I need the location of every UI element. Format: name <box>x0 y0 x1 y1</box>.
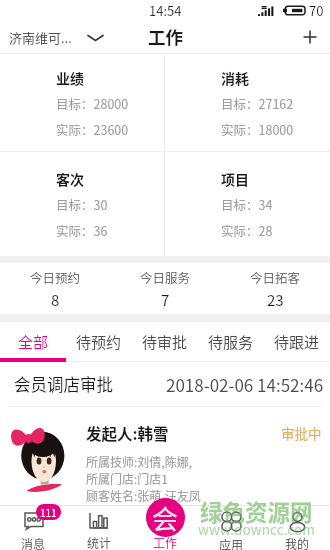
staticText: 实际：36 <box>56 221 108 239</box>
staticText: 2018-02-06 14:52:46 <box>166 372 324 397</box>
button[interactable]: Add <box>297 25 323 51</box>
button[interactable]: 今日预约 <box>0 263 110 314</box>
staticText: 待服务 <box>208 331 254 353</box>
staticText: 项目 <box>221 169 249 189</box>
staticText: 消耗 <box>221 68 249 88</box>
button[interactable]: 会员调店审批 <box>0 362 330 504</box>
staticText: 目标：30 <box>56 195 108 213</box>
staticText: 客次 <box>56 169 84 189</box>
staticText: 待审批 <box>142 331 188 353</box>
button[interactable]: 今日服务 <box>110 263 220 314</box>
staticText: 会 <box>152 499 179 537</box>
button[interactable]: 应用 <box>198 505 264 550</box>
staticText: 目标：34 <box>221 195 273 213</box>
button[interactable]: 业绩 <box>0 54 164 151</box>
staticText: 所属门店:门店1 <box>86 470 168 487</box>
button[interactable]: 全部 <box>0 322 66 362</box>
staticText: 审批中 <box>281 423 322 443</box>
button[interactable]: 待审批 <box>132 322 198 362</box>
staticText: 所属技师:刘倩,陈娜, <box>86 453 193 470</box>
staticText: 绿色资源网 <box>200 495 313 528</box>
staticText: 目标：28000 <box>56 94 129 112</box>
staticText: 目标：27162 <box>221 94 294 112</box>
button[interactable]: 待服务 <box>198 322 264 362</box>
staticText: 111 <box>40 505 57 519</box>
staticText: 实际：23600 <box>56 120 129 138</box>
staticText: 济南维可... <box>9 28 72 47</box>
staticText: 消息 <box>21 535 46 550</box>
staticText: 8 <box>51 289 60 311</box>
button[interactable]: 济南维可... <box>0 24 110 51</box>
button[interactable]: 我的 <box>264 505 330 550</box>
staticText: 7 <box>161 289 170 311</box>
button[interactable]: 统计 <box>66 505 132 550</box>
button[interactable]: 客次 <box>0 152 164 256</box>
staticText: www.downcc.com <box>198 519 315 539</box>
staticText: 待预约 <box>76 331 122 353</box>
button[interactable]: 今日拓客 <box>220 263 330 314</box>
button[interactable]: 项目 <box>165 152 330 256</box>
button[interactable]: 工作 <box>146 498 185 537</box>
staticText: 实际：28 <box>221 221 273 239</box>
staticText: 发起人:韩雪 <box>86 422 169 444</box>
staticText: 工作 <box>153 534 178 550</box>
button[interactable]: 111 <box>0 505 66 550</box>
staticText: 顾客姓名:张萌,汪友凤 <box>86 487 201 504</box>
staticText: 会员调店审批 <box>14 372 113 396</box>
staticText: 应用 <box>219 536 244 550</box>
staticText: 14:54 <box>149 1 182 20</box>
staticText: 我的 <box>285 535 310 550</box>
button[interactable]: 消耗 <box>165 54 330 151</box>
button[interactable]: 待预约 <box>66 322 132 362</box>
staticText: 今日拓客 <box>250 268 301 286</box>
staticText: 70 <box>309 1 324 20</box>
button[interactable]: 待跟进 <box>264 322 330 362</box>
staticText: 今日服务 <box>140 268 191 286</box>
staticText: 待跟进 <box>274 331 320 353</box>
staticText: 23 <box>267 289 284 311</box>
staticText: 实际：18000 <box>221 120 294 138</box>
staticText: 统计 <box>87 534 112 550</box>
staticText: 全部 <box>18 331 49 353</box>
staticText: 工作 <box>148 24 183 49</box>
staticText: 业绩 <box>56 68 84 88</box>
staticText: 今日预约 <box>30 268 81 286</box>
